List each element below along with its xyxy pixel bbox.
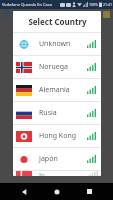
staticText: Unknown Server [39, 39, 87, 49]
staticText: Alemania [39, 85, 87, 95]
button[interactable]: Alemania [13, 79, 101, 101]
staticText: 100% [89, 2, 98, 7]
staticText: Japón [39, 154, 87, 164]
staticText: In [39, 171, 89, 176]
staticText: Vodafone Quando En Casa at home [2, 2, 54, 7]
button[interactable]: Hong Kong [13, 125, 101, 147]
button[interactable]: Home [48, 183, 66, 200]
button[interactable]: Rusia [13, 102, 101, 124]
button[interactable]: Recent apps [80, 183, 98, 200]
staticText: 21:41 [103, 2, 112, 7]
button[interactable]: Unknown Server [13, 33, 101, 55]
button[interactable]: In [13, 171, 101, 176]
staticText: Hong Kong [39, 131, 87, 141]
button[interactable]: Japón [13, 148, 101, 170]
button[interactable]: Noruega [13, 56, 101, 78]
staticText: Rusia [39, 108, 87, 118]
staticText: Noruega [39, 62, 87, 72]
staticText: Select Country [28, 16, 87, 27]
button[interactable]: Back [15, 183, 33, 200]
